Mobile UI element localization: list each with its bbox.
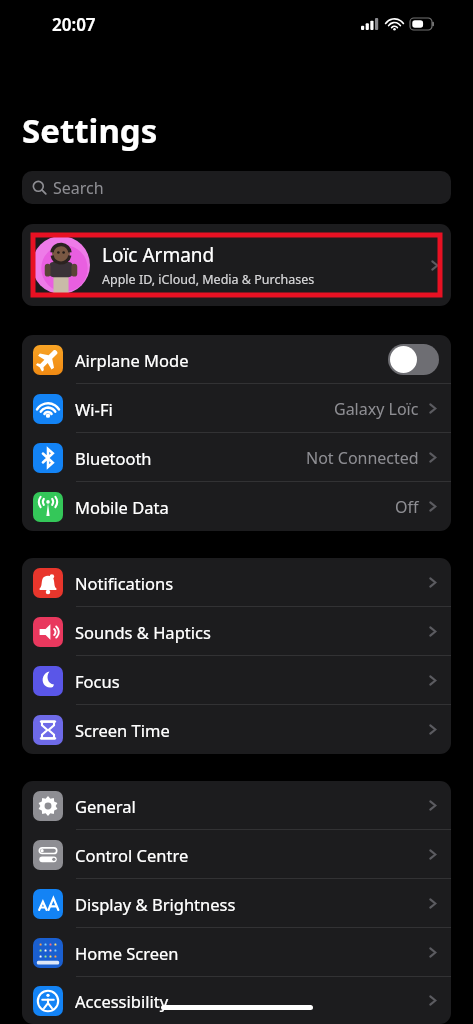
staticText: Focus (75, 670, 426, 692)
button[interactable]: Sounds & Haptics (22, 607, 451, 656)
button[interactable]: Display & Brightness (22, 879, 451, 928)
button[interactable]: Notifications (22, 558, 451, 607)
staticText: 20:07 (52, 13, 96, 36)
button[interactable]: Search (22, 171, 451, 204)
button[interactable]: Wi-Fi (22, 384, 451, 433)
staticText: Sounds & Haptics (75, 621, 426, 643)
staticText: Accessibility (75, 990, 426, 1012)
button[interactable]: Loïc Armand (22, 224, 451, 306)
button[interactable]: Screen Time (22, 705, 451, 754)
staticText: Home Screen (75, 942, 426, 964)
button[interactable]: Control Centre (22, 830, 451, 879)
staticText: Airplane Mode (75, 349, 388, 371)
staticText: Display & Brightness (75, 893, 426, 915)
button[interactable]: Focus (22, 656, 451, 705)
staticText: Off (395, 496, 419, 518)
button[interactable]: Home Screen (22, 928, 451, 977)
staticText: Wi-Fi (75, 398, 334, 420)
button[interactable]: Bluetooth (22, 433, 451, 482)
staticText: Search (53, 177, 104, 199)
staticText: Loïc Armand (102, 242, 215, 268)
staticText: Settings (22, 108, 158, 153)
button[interactable]: General (22, 781, 451, 830)
staticText: Bluetooth (75, 447, 306, 469)
staticText: Apple ID, iCloud, Media & Purchases (102, 271, 315, 288)
button[interactable]: Airplane Mode toggle (388, 344, 439, 375)
button[interactable]: Accessibility (22, 977, 451, 1024)
staticText: Galaxy Loïc (334, 398, 419, 420)
staticText: Screen Time (75, 719, 426, 741)
staticText: Not Connected (306, 447, 419, 469)
staticText: Control Centre (75, 844, 426, 866)
staticText: General (75, 795, 426, 817)
staticText: Mobile Data (75, 496, 395, 518)
button[interactable]: Airplane Mode (22, 335, 451, 384)
button[interactable]: Mobile Data (22, 482, 451, 531)
staticText: Notifications (75, 572, 426, 594)
